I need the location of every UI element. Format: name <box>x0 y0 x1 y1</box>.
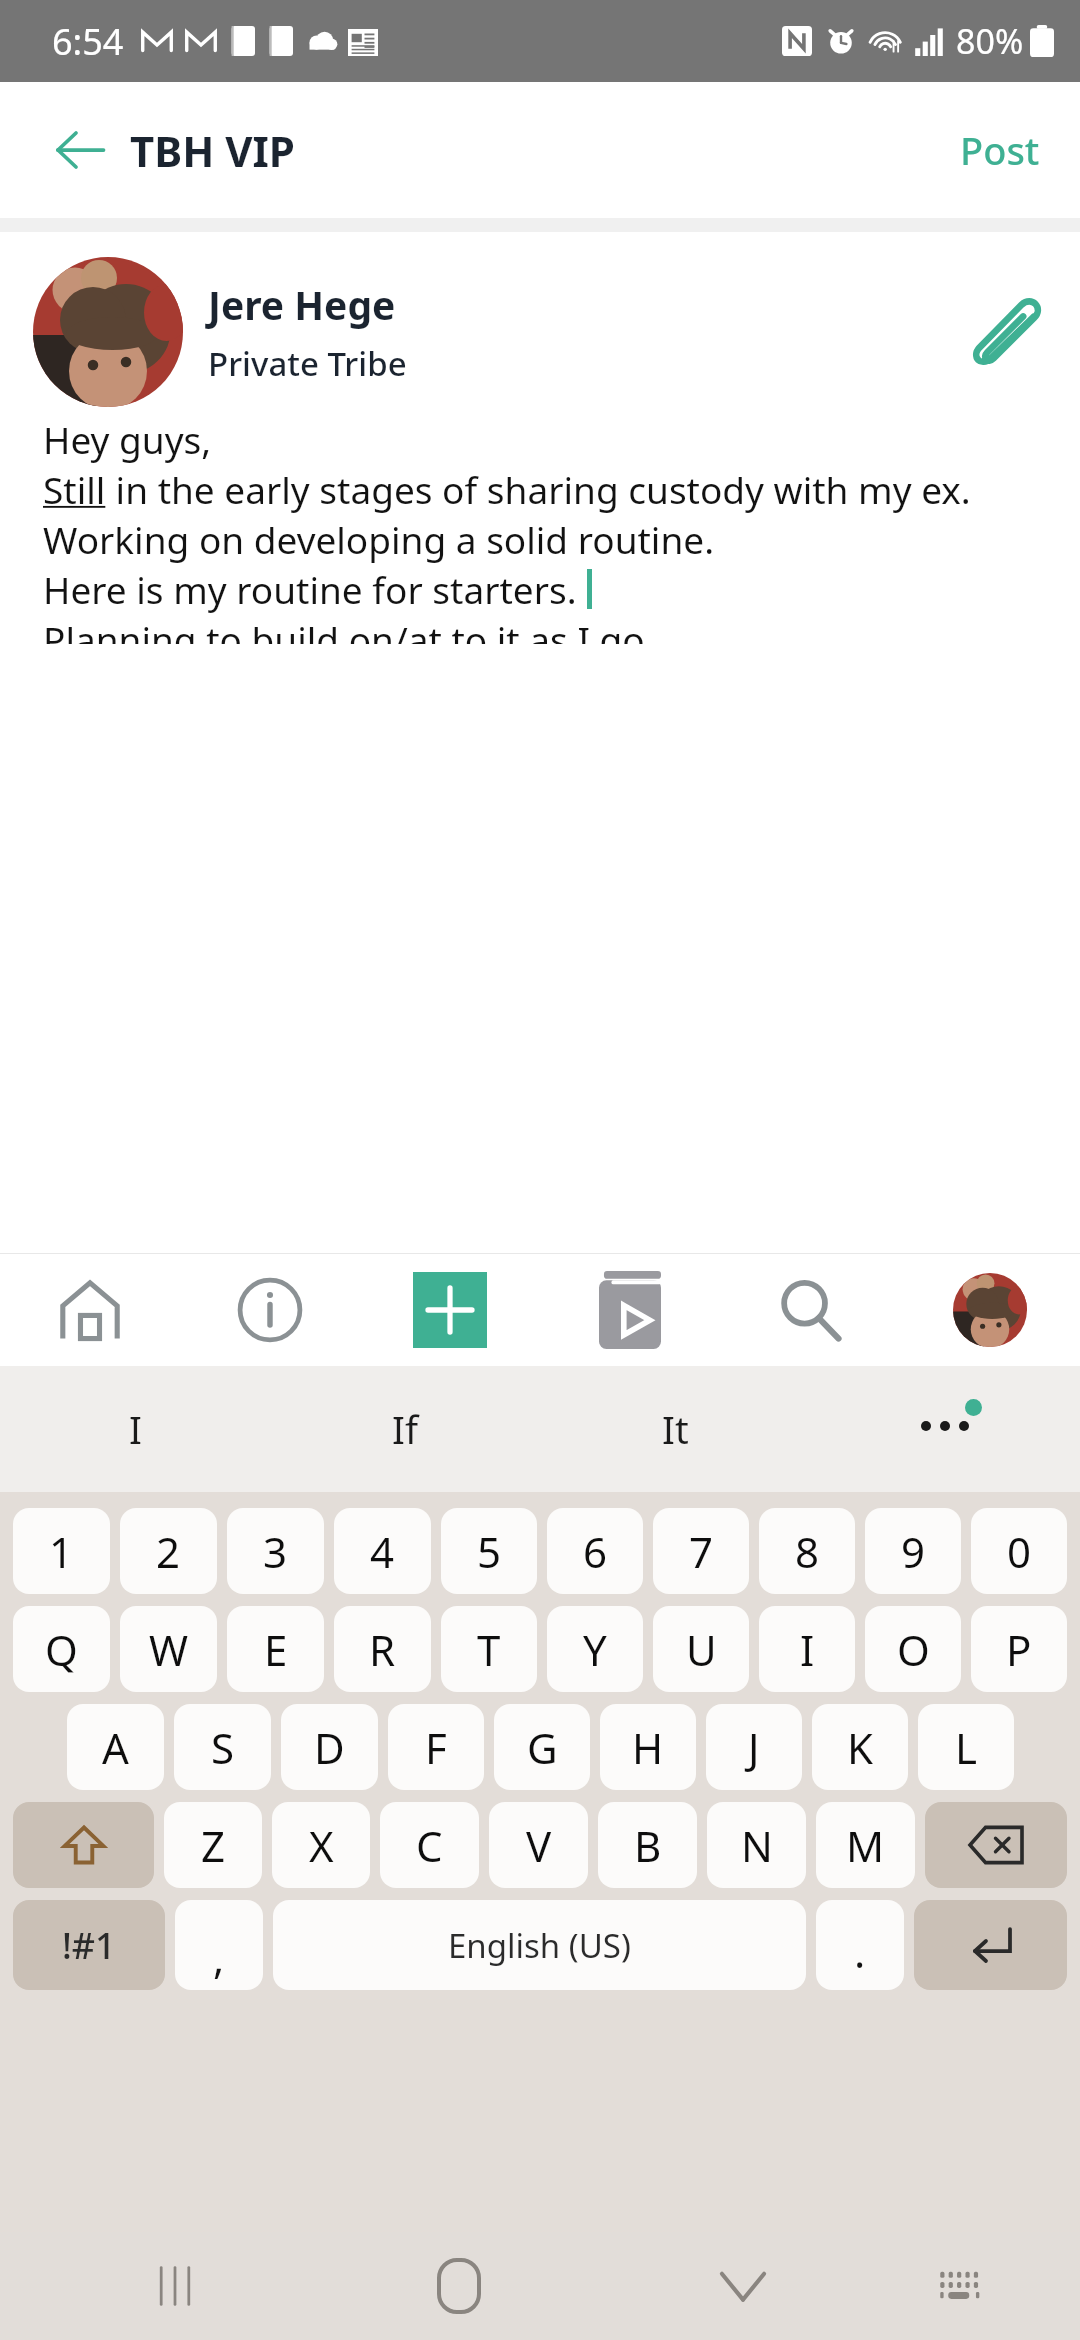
button[interactable]: Home <box>0 1254 180 1366</box>
button[interactable]: I <box>759 1606 855 1692</box>
button[interactable]: Q <box>13 1606 110 1692</box>
staticText: B <box>634 1817 662 1874</box>
button[interactable]: W <box>120 1606 217 1692</box>
button[interactable]: F <box>388 1704 484 1790</box>
button[interactable]: R <box>334 1606 431 1692</box>
staticText: 9 <box>901 1523 926 1580</box>
staticText: Q <box>45 1621 78 1678</box>
button[interactable]: L <box>918 1704 1014 1790</box>
staticText: E <box>264 1621 288 1678</box>
staticText: English (US) <box>448 1923 631 1968</box>
staticText: Z <box>201 1817 226 1874</box>
staticText: M <box>846 1817 885 1874</box>
button[interactable]: 9 <box>865 1508 961 1594</box>
staticText: Private Tribe <box>208 341 407 386</box>
staticText: N <box>741 1817 773 1874</box>
staticText: H <box>632 1719 664 1776</box>
button[interactable]: J <box>706 1704 802 1790</box>
staticText: 80% <box>956 18 1024 64</box>
button[interactable]: 0 <box>971 1508 1067 1594</box>
button[interactable]: Back <box>44 114 116 186</box>
button[interactable]: Post <box>946 112 1054 188</box>
button[interactable]: 3 <box>227 1508 324 1594</box>
staticText: 7 <box>689 1523 714 1580</box>
staticText: , <box>213 1929 225 1986</box>
button[interactable]: Symbols <box>13 1900 165 1990</box>
button[interactable]: Info <box>180 1254 360 1366</box>
button[interactable]: Y <box>547 1606 643 1692</box>
button[interactable]: It <box>540 1366 810 1492</box>
button[interactable]: V <box>489 1802 588 1888</box>
staticText: V <box>526 1817 552 1874</box>
staticText: T <box>477 1621 501 1678</box>
button[interactable]: U <box>653 1606 749 1692</box>
staticText: C <box>416 1817 443 1874</box>
button[interactable]: Attach file <box>954 280 1058 384</box>
button[interactable]: Backspace <box>925 1802 1067 1888</box>
button[interactable]: K <box>812 1704 908 1790</box>
button[interactable]: M <box>816 1802 915 1888</box>
staticText: I <box>800 1621 815 1678</box>
button[interactable]: E <box>227 1606 324 1692</box>
staticText: D <box>314 1719 345 1776</box>
staticText: F <box>425 1719 447 1776</box>
button[interactable]: T <box>441 1606 537 1692</box>
staticText: !#1 <box>62 1921 116 1970</box>
staticText: K <box>847 1719 873 1776</box>
staticText: J <box>748 1719 760 1776</box>
button[interactable]: G <box>494 1704 590 1790</box>
staticText: Here is my routine for starters. <box>43 564 587 614</box>
staticText: 2 <box>156 1523 181 1580</box>
button[interactable]: Shift <box>13 1802 154 1888</box>
button[interactable]: Recent apps <box>91 2232 258 2340</box>
button[interactable]: More options <box>810 1366 1080 1492</box>
button[interactable]: Profile <box>900 1254 1080 1366</box>
button[interactable]: S <box>174 1704 271 1790</box>
button[interactable]: A <box>67 1704 164 1790</box>
button[interactable]: Hide keyboard <box>659 2232 826 2340</box>
staticText: TBH VIP <box>130 122 295 179</box>
button[interactable]: X <box>272 1802 370 1888</box>
staticText: U <box>686 1621 717 1678</box>
button[interactable]: D <box>281 1704 378 1790</box>
staticText: 8 <box>795 1523 820 1580</box>
staticText: L <box>955 1719 978 1776</box>
button[interactable]: H <box>600 1704 696 1790</box>
button[interactable]: Media <box>540 1254 720 1366</box>
staticText: R <box>369 1621 396 1678</box>
staticText: If <box>392 1403 418 1455</box>
button[interactable]: 8 <box>759 1508 855 1594</box>
button[interactable]: 4 <box>334 1508 431 1594</box>
button[interactable]: Search <box>720 1254 900 1366</box>
button[interactable]: Home <box>375 2232 542 2340</box>
button[interactable]: Enter <box>914 1900 1067 1990</box>
staticText: O <box>897 1621 930 1678</box>
button[interactable]: B <box>598 1802 697 1888</box>
button[interactable]: 5 <box>441 1508 537 1594</box>
button[interactable]: Create post <box>360 1254 540 1366</box>
button[interactable]: N <box>707 1802 806 1888</box>
button[interactable]: Space <box>273 1900 806 1990</box>
button[interactable]: If <box>270 1366 540 1492</box>
button[interactable]: Z <box>164 1802 262 1888</box>
staticText: 3 <box>263 1523 288 1580</box>
staticText: 6:54 <box>52 17 124 66</box>
button[interactable]: 6 <box>547 1508 643 1594</box>
staticText: S <box>211 1719 235 1776</box>
staticText: 1 <box>49 1523 74 1580</box>
button[interactable]: Comma <box>175 1900 263 1990</box>
button[interactable]: P <box>971 1606 1067 1692</box>
button[interactable]: O <box>865 1606 961 1692</box>
button[interactable]: 7 <box>653 1508 749 1594</box>
staticText: . <box>854 1923 866 1980</box>
button[interactable]: 2 <box>120 1508 217 1594</box>
staticText: 0 <box>1007 1523 1032 1580</box>
button[interactable]: I <box>0 1366 270 1492</box>
staticText: Working on developing a solid routine. <box>43 514 715 564</box>
button[interactable]: C <box>380 1802 479 1888</box>
staticText: Planning to build on/at to it as I go. <box>43 614 655 644</box>
button[interactable]: Period <box>816 1900 904 1990</box>
button[interactable]: Keyboard settings <box>876 2232 1043 2340</box>
button[interactable]: 1 <box>13 1508 110 1594</box>
staticText: Hey guys, <box>43 414 212 464</box>
